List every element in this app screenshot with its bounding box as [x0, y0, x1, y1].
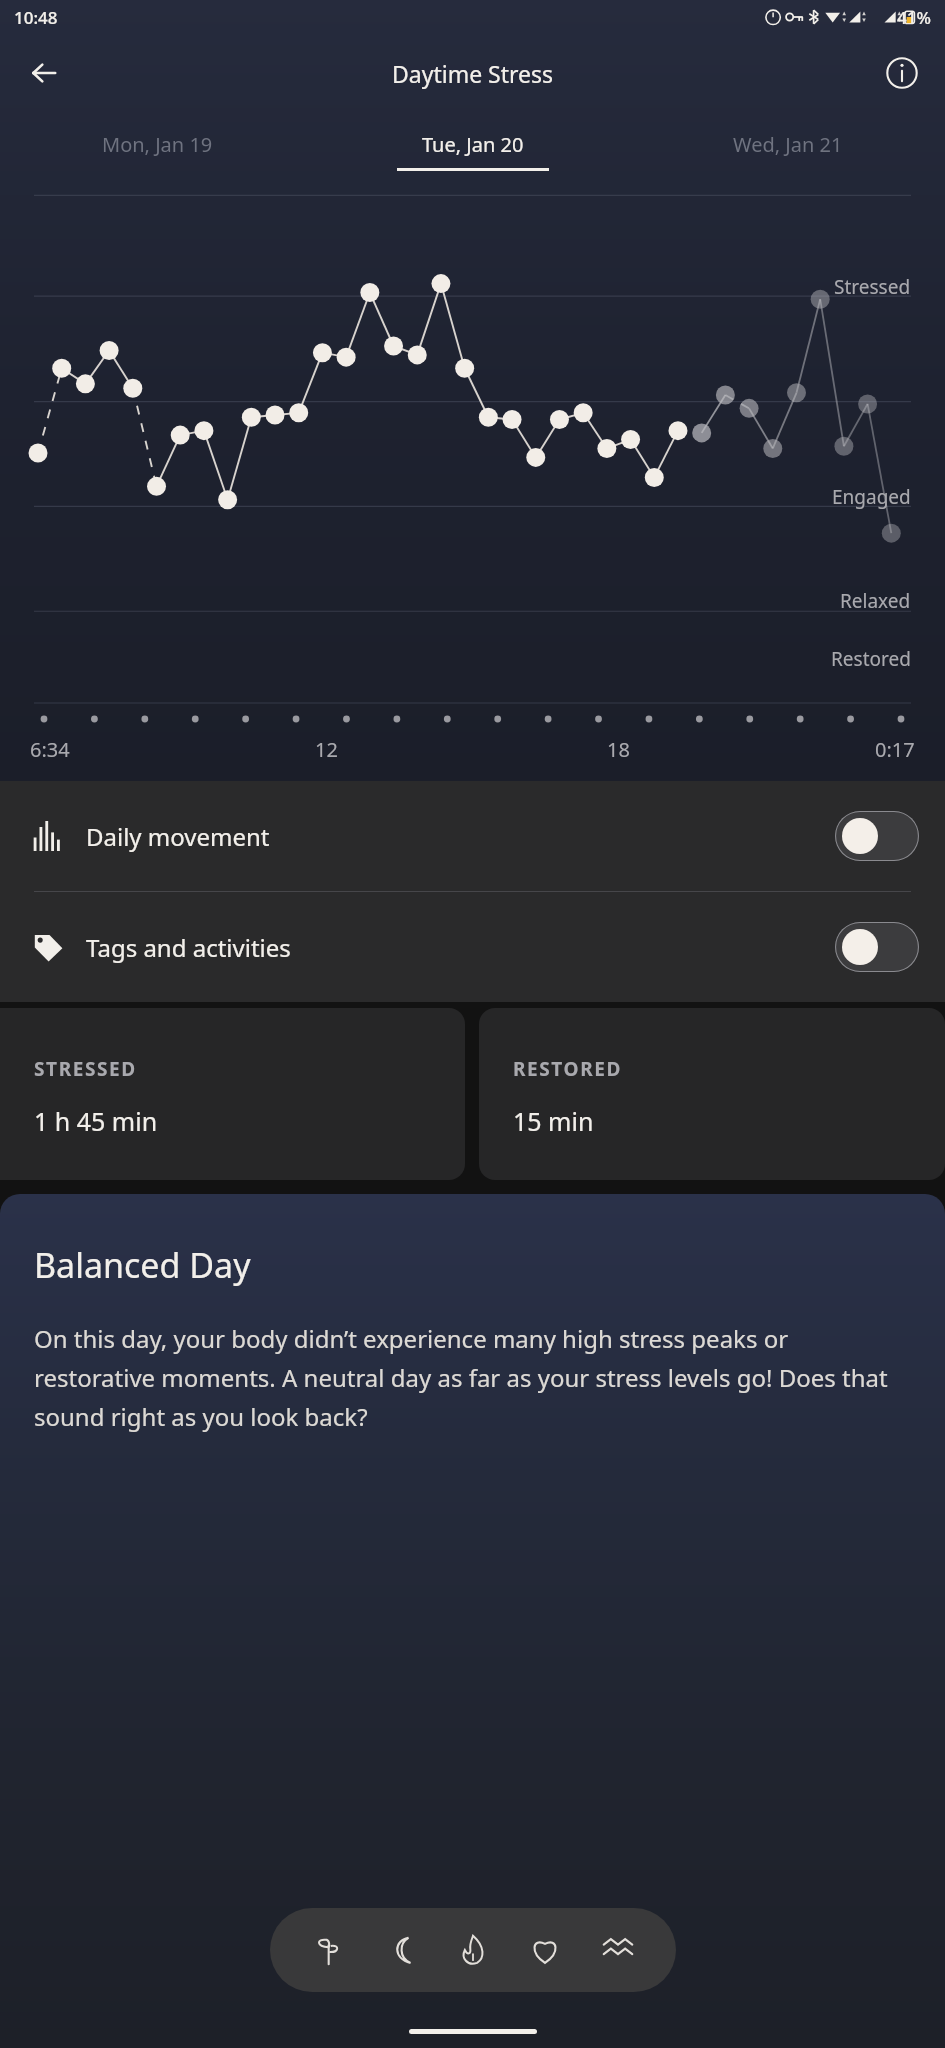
staticText: Stressed: [834, 274, 911, 300]
staticText: Engaged: [832, 484, 911, 510]
button[interactable]: Wed, Jan 21: [630, 112, 945, 190]
staticText: 0:17: [875, 736, 915, 763]
staticText: Tue, Jan 20: [422, 131, 524, 158]
staticText: Daily movement: [86, 820, 270, 853]
button[interactable]: Health: [513, 1918, 577, 1982]
staticText: 6:34: [30, 736, 70, 763]
staticText: On this day, your body didn’t experience…: [34, 1322, 915, 1433]
staticText: Relaxed: [840, 588, 911, 614]
staticText: 10:48: [14, 6, 58, 29]
staticText: Restored: [831, 646, 911, 672]
staticText: 1 h 45 min: [34, 1104, 158, 1138]
button[interactable]: Daily movement: [0, 781, 945, 891]
staticText: Mon, Jan 19: [102, 131, 213, 158]
staticText: Daytime Stress: [392, 58, 554, 89]
staticText: 18: [607, 736, 630, 763]
staticText: 12: [315, 736, 338, 763]
button[interactable]: Mon, Jan 19: [0, 112, 315, 190]
button[interactable]: Tue, Jan 20: [315, 112, 630, 190]
button[interactable]: RESTORED: [479, 1008, 945, 1180]
button[interactable]: Sleep: [369, 1918, 433, 1982]
button[interactable]: Tags and activities: [0, 892, 945, 1002]
staticText: STRESSED: [34, 1056, 137, 1082]
button[interactable]: Activity: [441, 1918, 505, 1982]
button[interactable]: STRESSED: [0, 1008, 465, 1180]
button[interactable]: Stress: [586, 1918, 650, 1982]
staticText: 15 min: [513, 1104, 594, 1138]
button[interactable]: Back: [16, 45, 72, 101]
staticText: Balanced Day: [34, 1242, 251, 1288]
button[interactable]: Today: [296, 1918, 360, 1982]
staticText: RESTORED: [513, 1056, 622, 1082]
button[interactable]: Tags and activities toggle: [835, 922, 919, 972]
button[interactable]: Balanced Day: [0, 1194, 945, 2048]
staticText: 41%: [897, 6, 931, 29]
staticText: Tags and activities: [86, 931, 291, 964]
button[interactable]: Info: [875, 46, 929, 100]
button[interactable]: Daily movement toggle: [835, 811, 919, 861]
staticText: Wed, Jan 21: [733, 131, 843, 158]
